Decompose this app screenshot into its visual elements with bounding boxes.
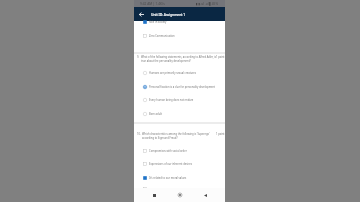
button[interactable]: Compromises with social order [134, 146, 225, 156]
button[interactable]: Humans are primarily sexual creatures [134, 68, 225, 78]
button[interactable]: Home [174, 189, 186, 201]
staticText: 9. [137, 55, 140, 59]
button[interactable]: Every human being does not endure [134, 95, 225, 105]
staticText: Role in society [149, 20, 167, 24]
staticText: 1 point [216, 55, 225, 59]
button[interactable]: Zero Communication [134, 31, 225, 41]
staticText: Which characteristics among the followin… [142, 132, 216, 140]
staticText: Unit III: Assignment 1 [151, 12, 186, 16]
button[interactable]: Personal fixation is a clue for personal… [134, 82, 225, 92]
staticText: It's related to our moral values [149, 176, 187, 180]
button[interactable]: It's related to our moral values [134, 173, 225, 183]
button[interactable]: Role in society [134, 17, 225, 27]
staticText: Zero Communication [149, 34, 175, 38]
button[interactable]: Back [199, 189, 211, 201]
button[interactable]: Expressions of our inherent desires [134, 159, 225, 169]
button[interactable]: Recent apps [148, 189, 160, 201]
button[interactable]: Back [134, 7, 149, 21]
staticText: Compromises with social order [149, 149, 187, 153]
staticText: Humans are primarily sexual creatures [149, 71, 197, 75]
staticText: Every human being does not endure [149, 98, 194, 102]
button[interactable]: Born adult [134, 109, 225, 119]
staticText: Expressions of our inherent desires [149, 162, 192, 166]
staticText: Personal fixation is a clue for personal… [149, 85, 216, 89]
staticText: Born adult [149, 112, 162, 116]
staticText: 10. [137, 132, 141, 136]
staticText: 1 point [216, 132, 225, 136]
staticText: What of the following statements, accord… [141, 55, 216, 63]
staticText: 9:42 AM | 1.4K/s [140, 2, 165, 6]
staticText: ▮ ▮.ul .ul ▌45% [196, 2, 219, 6]
